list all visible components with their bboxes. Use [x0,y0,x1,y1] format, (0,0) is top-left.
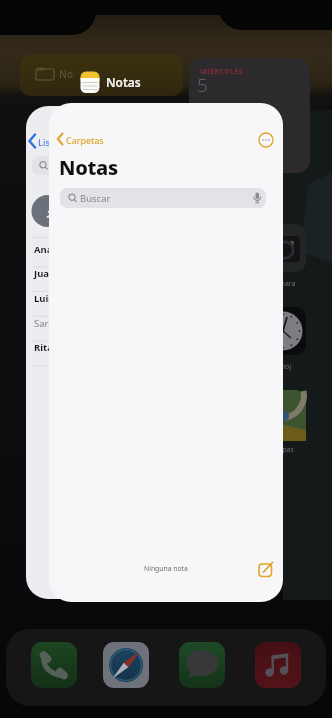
button[interactable]: Luis [26,290,146,312]
button[interactable]: Carpetas [53,129,123,149]
staticText: Luis [34,292,54,305]
button[interactable] [32,156,86,175]
staticText: Buscar [80,192,111,205]
staticText: Reloj [275,362,292,372]
button[interactable] [255,642,301,688]
button[interactable]: Lista [26,132,86,150]
staticText: Notas [106,74,141,90]
button[interactable]: Juan [26,265,146,287]
staticText: Ana [34,243,53,256]
staticText: Lista [38,136,59,149]
staticText: MIÉRCOLES [200,67,244,77]
staticText: No [59,67,74,81]
button[interactable] [256,130,276,150]
staticText: Notas [59,154,118,181]
staticText: Rita [34,341,53,354]
button[interactable] [251,555,279,583]
staticText: Sara [34,317,54,330]
staticText: Carpetas [66,134,104,146]
button[interactable] [103,642,149,688]
button[interactable]: Rita [26,339,146,361]
button[interactable]: Ana [26,241,146,263]
button[interactable]: Buscar [60,188,266,208]
button[interactable] [179,642,225,688]
staticText: Ninguna nota [144,564,188,573]
staticText: 5 [197,72,208,98]
button[interactable] [31,642,77,688]
staticText: Cámara [270,279,296,289]
staticText: Mapas [272,445,294,455]
staticText: Juan [34,267,56,280]
button[interactable]: Sara [26,315,146,337]
